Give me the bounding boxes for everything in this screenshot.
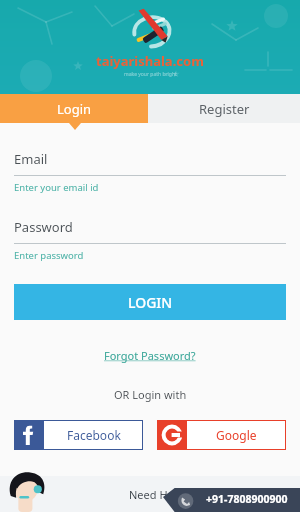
staticText: Password xyxy=(14,218,73,236)
button[interactable]: Password xyxy=(14,218,286,262)
button[interactable]: Facebook xyxy=(14,420,143,450)
staticText: +91-7808900900 xyxy=(206,492,288,506)
staticText: Need Help? xyxy=(129,487,189,502)
staticText: Login xyxy=(57,100,92,118)
button[interactable]: Email xyxy=(14,150,286,194)
button[interactable]: LOGIN xyxy=(14,284,286,320)
staticText: Email xyxy=(14,150,48,168)
staticText: Register xyxy=(199,100,250,118)
button[interactable]: Call support xyxy=(163,486,300,512)
staticText: OR Login with xyxy=(114,387,187,402)
staticText: LOGIN xyxy=(128,293,173,312)
button[interactable]: Need Help? xyxy=(54,476,300,512)
staticText: make your path bright xyxy=(124,71,177,78)
button[interactable]: Register xyxy=(148,94,300,123)
staticText: Facebook xyxy=(67,427,121,443)
staticText: taiyarishala.com xyxy=(96,52,204,70)
staticText: Enter password xyxy=(14,249,84,262)
button[interactable]: Login xyxy=(0,94,148,123)
staticText: Google xyxy=(216,427,257,443)
button[interactable]: Forgot Password? xyxy=(104,348,196,363)
staticText: Enter your email id xyxy=(14,181,99,194)
button[interactable]: Google xyxy=(157,420,286,450)
